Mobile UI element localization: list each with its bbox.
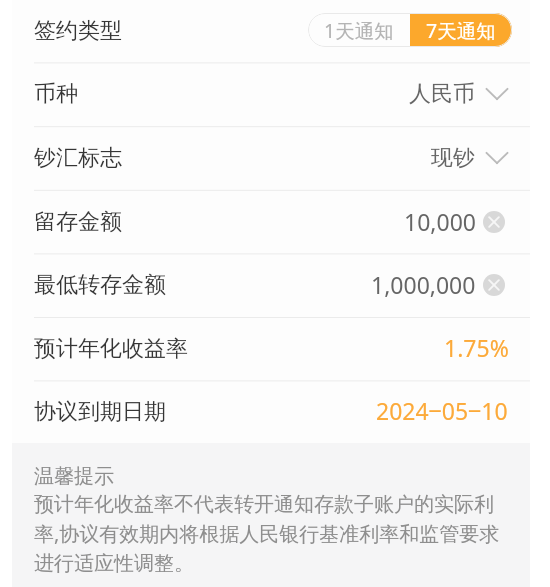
staticText: 协议到期日期 [34,398,166,426]
staticText: 2024‒05‒10 [376,395,508,426]
staticText: 预计年化收益率 [34,335,188,363]
button[interactable]: 1天通知 [308,13,410,47]
button[interactable]: 预计年化收益率 [0,317,550,380]
button[interactable]: 最低转存金额 [0,253,550,317]
staticText: 1天通知 [324,17,394,44]
button[interactable]: Clear [483,274,505,296]
button[interactable]: 协议到期日期 [0,380,550,443]
other: Select [485,86,509,102]
button[interactable]: 签约类型 [0,0,550,62]
staticText: 最低转存金额 [34,271,166,299]
button[interactable]: 币种 [0,62,550,126]
staticText: 1.75% [444,332,509,363]
button[interactable]: 留存金额 [0,190,550,254]
staticText: 留存金额 [34,208,122,236]
staticText: 签约类型 [34,17,122,45]
staticText: 7天通知 [426,17,496,44]
staticText: 币种 [34,80,78,108]
staticText: 1,000,000 [371,269,476,300]
staticText: 人民币 [409,80,475,108]
staticText: 10,000 [404,206,476,237]
staticText: 现钞 [431,144,475,172]
button[interactable]: 钞汇标志 [0,126,550,190]
button[interactable]: 7天通知 [410,13,512,47]
staticText: 钞汇标志 [34,144,122,172]
other: Select [485,150,509,166]
staticText: 温馨提示 预计年化收益率不代表转开通知存款子账户的实际利率,协议有效期内将根据人… [34,464,502,576]
button[interactable]: Clear [483,211,505,233]
